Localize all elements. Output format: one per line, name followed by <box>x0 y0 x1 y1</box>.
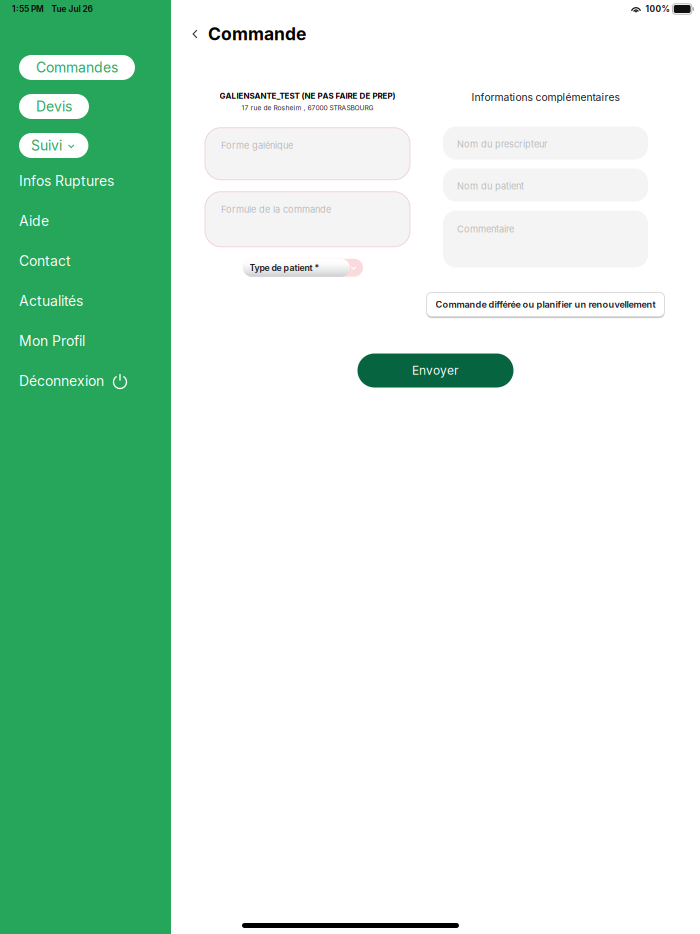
staticText: Actualités <box>19 292 83 309</box>
staticText: Contact <box>19 252 71 269</box>
button[interactable]: Aide <box>19 209 170 233</box>
button[interactable]: Commentaire <box>443 210 648 267</box>
staticText: Aide <box>19 212 49 229</box>
staticText: Informations complémentaires <box>471 91 619 103</box>
button[interactable]: Suivi <box>19 133 88 158</box>
staticText: Mon Profil <box>19 332 85 349</box>
staticText: Envoyer <box>412 363 459 378</box>
button[interactable]: Forme galénique <box>205 128 410 180</box>
button[interactable]: Contact <box>19 249 170 273</box>
button[interactable]: Déconnexion <box>19 369 170 393</box>
staticText: Infos Ruptures <box>19 172 114 189</box>
button[interactable]: Commandes <box>19 55 135 80</box>
staticText: Commande différée ou planifier un renouv… <box>435 299 655 310</box>
button[interactable]: Commande différée ou planifier un renouv… <box>426 291 664 317</box>
staticText: 1:55 PM <box>12 4 44 14</box>
staticText: Forme galénique <box>221 140 293 151</box>
staticText: Déconnexion <box>19 372 104 389</box>
button[interactable]: Formule de la commande <box>205 192 410 247</box>
staticText: Commentaire <box>457 223 514 235</box>
staticText: Devis <box>36 98 72 115</box>
staticText: 17 rue de Rosheim , 67000 STRASBOURG <box>241 104 373 112</box>
staticText: Commande <box>208 23 306 44</box>
button[interactable]: Back <box>182 21 208 47</box>
button[interactable]: Type de patient * <box>247 259 367 277</box>
button[interactable]: Nom du patient <box>443 168 648 201</box>
staticText: Nom du patient <box>457 180 524 192</box>
staticText: Commandes <box>36 59 118 76</box>
staticText: GALIENSANTE_TEST (NE PAS FAIRE DE PREP) <box>219 91 395 101</box>
staticText: Suivi <box>31 137 62 154</box>
staticText: 100% <box>645 4 669 14</box>
button[interactable]: Devis <box>19 94 89 119</box>
button[interactable]: Infos Ruptures <box>19 169 170 193</box>
button[interactable]: Mon Profil <box>19 329 170 353</box>
staticText: Formule de la commande <box>221 204 331 215</box>
button[interactable]: Nom du prescripteur <box>443 126 648 159</box>
button[interactable]: Actualités <box>19 289 170 313</box>
staticText: Nom du prescripteur <box>457 138 547 150</box>
button[interactable]: Envoyer <box>357 353 513 387</box>
staticText: Tue Jul 26 <box>51 4 92 14</box>
staticText: Type de patient * <box>249 262 319 273</box>
